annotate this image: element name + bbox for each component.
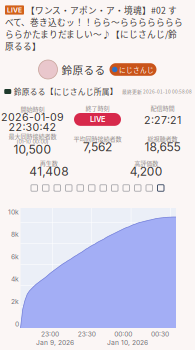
staticText: 平均同時接続者数: [73, 134, 121, 143]
staticText: 2026-01-09: [1, 110, 64, 123]
staticText: 配信時間: [150, 104, 174, 112]
button[interactable]: Chart tool: [146, 185, 152, 191]
staticText: 6k: [11, 253, 19, 261]
staticText: LIVE: [7, 6, 22, 14]
staticText: 23:00: [41, 330, 59, 338]
button[interactable]: Chart tool: [100, 185, 106, 191]
staticText: べて、巻き込むッ！！らら〜ららららららら: [5, 16, 183, 28]
staticText: 2k: [11, 297, 19, 306]
staticText: 原るる】: [5, 40, 41, 52]
staticText: 00:00: [114, 330, 132, 338]
staticText: 8k: [11, 230, 19, 238]
staticText: 高評価数: [134, 159, 158, 167]
button[interactable]: にじさんじ: [109, 63, 156, 76]
staticText: 【ワンス・アポン・ア・境魂】#02 す: [26, 4, 177, 16]
staticText: にじさんじ: [119, 65, 154, 74]
staticText: (01-10 00:00): [16, 138, 48, 145]
button[interactable]: Chart tool: [111, 185, 118, 191]
staticText: 23:30: [78, 330, 96, 338]
staticText: 鈴原るる: [61, 62, 105, 77]
staticText: 終了時刻: [85, 104, 109, 112]
button[interactable]: Chart tool: [157, 185, 164, 191]
staticText: 18,655: [144, 140, 180, 154]
button[interactable]: Chart tool: [77, 185, 83, 191]
staticText: 00:30: [151, 330, 169, 338]
button[interactable]: Chart tool: [65, 185, 72, 191]
staticText: LIVE: [90, 115, 105, 124]
staticText: 開始時刻: [20, 105, 44, 113]
button[interactable]: Chart tool: [123, 185, 129, 191]
staticText: 最大同時接続者数: [8, 132, 56, 140]
button[interactable]: Channel avatar: [38, 60, 57, 79]
staticText: 4k: [11, 275, 19, 283]
staticText: 10k: [8, 208, 19, 216]
staticText: 7,562: [83, 140, 112, 154]
staticText: 4,200: [130, 164, 163, 179]
staticText: ららかたまりだましい〜♪【にじさんじ/鈴: [5, 28, 177, 40]
button[interactable]: Chart tool: [134, 185, 141, 191]
staticText: 41,408: [29, 164, 68, 179]
staticText: 2:27:21: [144, 113, 181, 126]
staticText: 10,500: [13, 142, 51, 157]
staticText: Jan 9, 2026: [36, 339, 74, 347]
button[interactable]: Chart tool: [54, 185, 60, 191]
staticText: Jan 10, 2026: [107, 339, 148, 347]
staticText: 22:30:42: [8, 120, 56, 133]
staticText: 最終更新 2026-01-10 00:58:08: [122, 88, 192, 95]
button[interactable]: Chart tool: [42, 185, 49, 191]
button[interactable]: Chart tool: [88, 185, 95, 191]
staticText: 鈴原るる【にじさんじ所属】: [14, 86, 118, 97]
staticText: 0: [15, 320, 19, 328]
button[interactable]: Chart tool: [31, 185, 37, 191]
staticText: 再生数: [40, 159, 58, 167]
button[interactable]: 鈴原るる【にじさんじ所属】: [4, 86, 118, 97]
staticText: 総視聴者数: [147, 134, 177, 143]
